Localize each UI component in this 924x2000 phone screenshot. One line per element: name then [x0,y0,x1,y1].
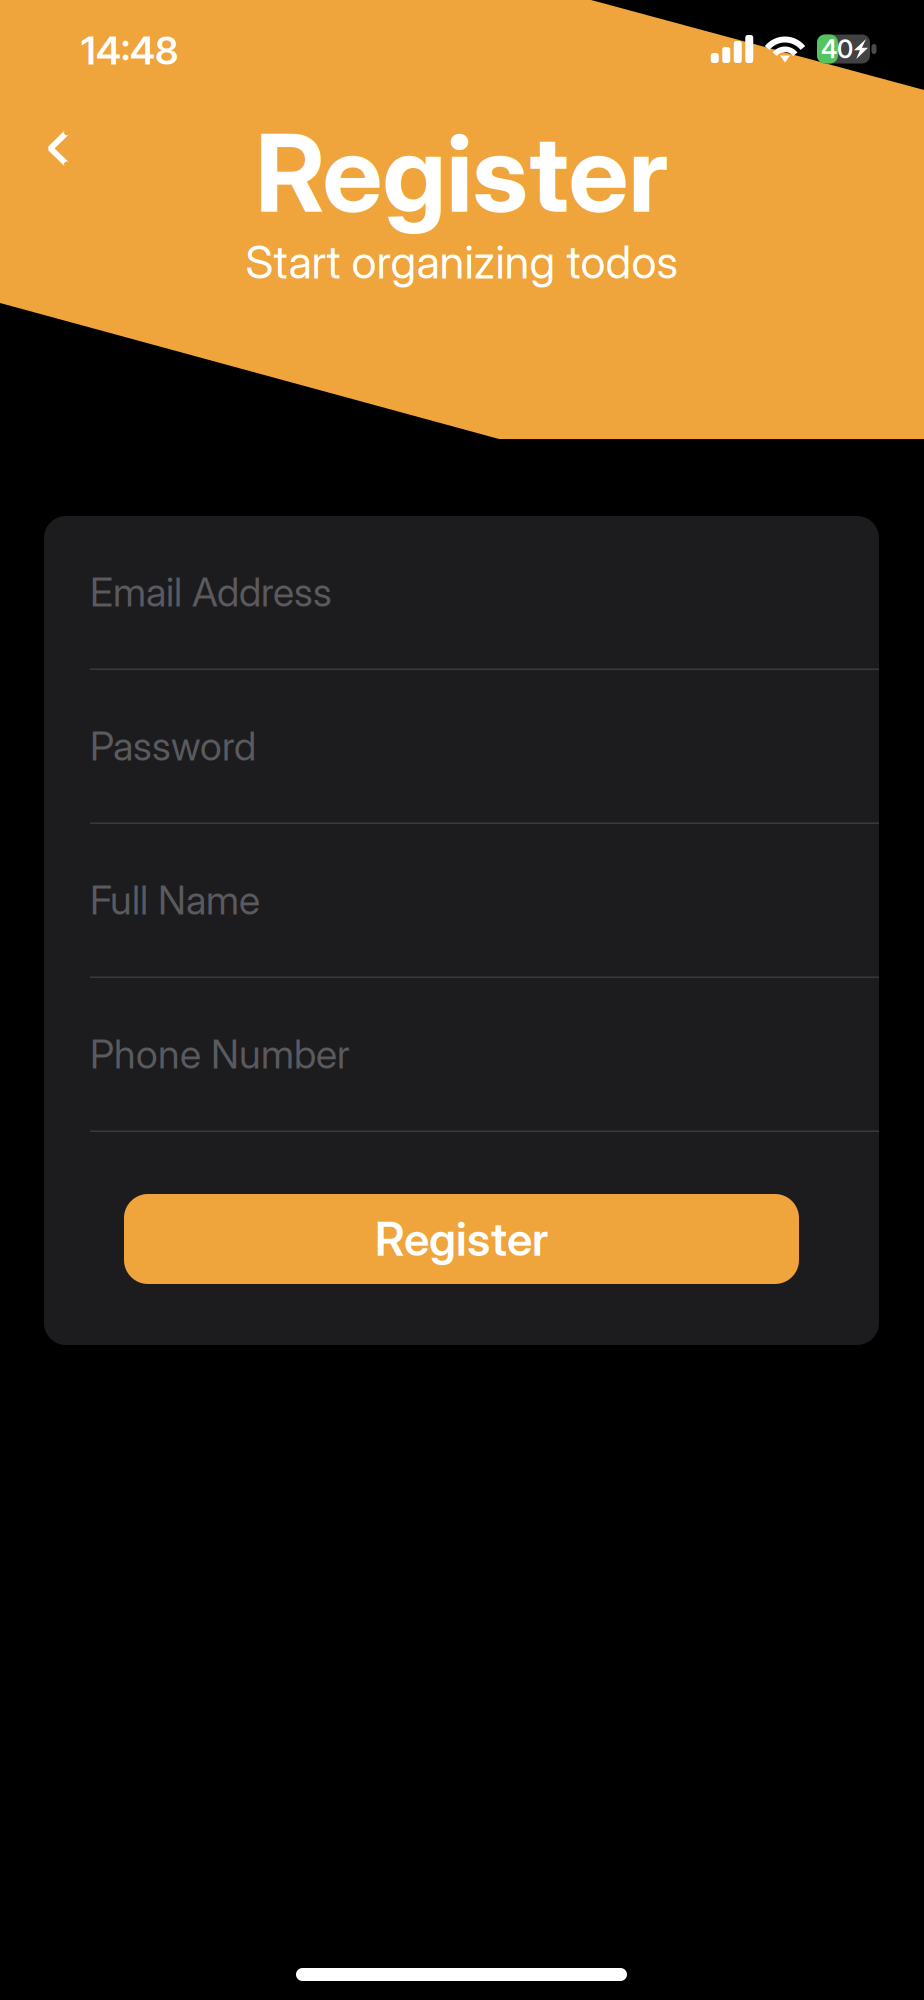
button[interactable]: Back [22,104,95,192]
staticText: Start organizing todos [245,235,678,289]
button[interactable]: Phone Number [44,978,879,1132]
staticText: Phone Number [90,1030,350,1078]
staticText: Full Name [90,876,260,924]
button[interactable]: Password [44,670,879,824]
staticText: Register [375,1211,548,1267]
staticText: 40 [821,34,853,64]
staticText: Password [90,722,256,770]
button[interactable]: Full Name [44,824,879,978]
staticText: 14:48 [81,27,178,74]
staticText: Register [255,108,668,238]
staticText: Email Address [90,568,332,616]
button[interactable]: Email Address [44,516,879,670]
button[interactable]: Register [124,1194,799,1284]
